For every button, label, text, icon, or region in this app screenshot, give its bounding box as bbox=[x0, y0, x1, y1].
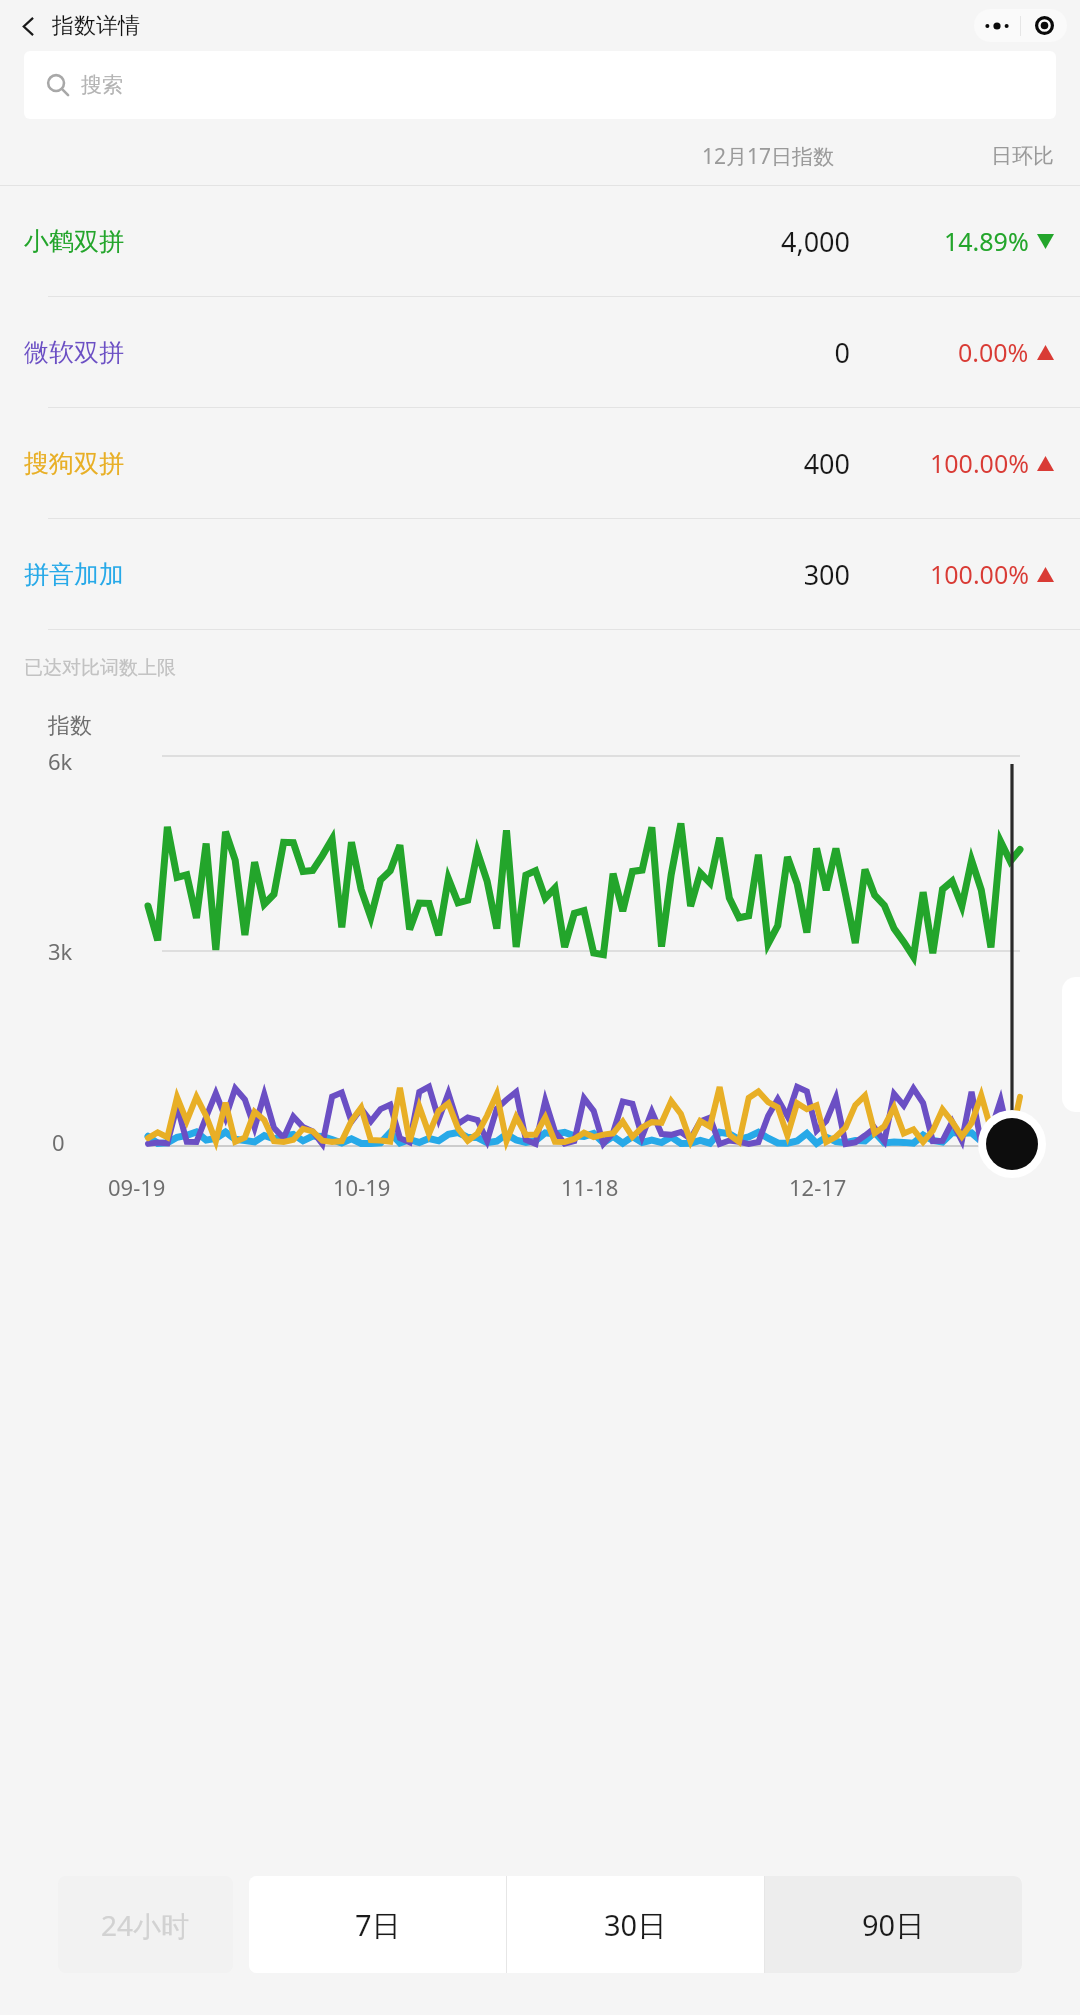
staticText: 14.89% bbox=[944, 224, 1029, 258]
staticText: 10-19 bbox=[333, 1172, 391, 1202]
staticText: 300 bbox=[620, 556, 850, 593]
staticText: 指数 bbox=[48, 712, 92, 740]
staticText: 4,000 bbox=[620, 223, 850, 260]
staticText: 400 bbox=[620, 445, 850, 482]
staticText: 100.00% bbox=[930, 557, 1029, 591]
staticText: 小鹤双拼 bbox=[24, 226, 124, 257]
staticText: 6k bbox=[48, 746, 73, 776]
staticText: 12-17 bbox=[789, 1172, 847, 1202]
staticText: 日环比 bbox=[834, 143, 1054, 169]
staticText: 09-19 bbox=[108, 1172, 166, 1202]
staticText: 24小时 bbox=[101, 1906, 190, 1944]
staticText: 11-18 bbox=[561, 1172, 619, 1202]
staticText: 7日 bbox=[355, 1905, 401, 1945]
staticText: 微软双拼 bbox=[24, 337, 124, 368]
button[interactable]: 小鹤双拼 bbox=[0, 186, 1080, 296]
button[interactable]: 24小时 bbox=[58, 1876, 233, 1973]
staticText: 搜索 bbox=[81, 72, 123, 98]
staticText: 0 bbox=[620, 334, 850, 371]
staticText: 已达对比词数上限 bbox=[24, 656, 176, 680]
button[interactable]: More bbox=[974, 9, 1020, 42]
button[interactable]: Close bbox=[1021, 9, 1067, 42]
button[interactable]: Back bbox=[13, 11, 43, 41]
staticText: 0.00% bbox=[958, 335, 1029, 369]
staticText: 0 bbox=[52, 1127, 65, 1157]
button[interactable]: 7日 bbox=[249, 1876, 506, 1973]
button[interactable]: 微软双拼 bbox=[0, 297, 1080, 407]
button[interactable]: 30日 bbox=[507, 1876, 764, 1973]
staticText: 搜狗双拼 bbox=[24, 448, 124, 479]
staticText: 30日 bbox=[604, 1905, 667, 1945]
button[interactable]: 搜索 bbox=[24, 51, 1056, 119]
staticText: 90日 bbox=[862, 1905, 925, 1945]
staticText: 指数详情 bbox=[52, 12, 140, 40]
button[interactable]: 搜狗双拼 bbox=[0, 408, 1080, 518]
button[interactable]: 90日 bbox=[765, 1876, 1022, 1973]
button[interactable]: 拼音加加 bbox=[0, 519, 1080, 629]
staticText: 12月17日指数 bbox=[569, 142, 834, 171]
staticText: 拼音加加 bbox=[24, 559, 124, 590]
staticText: 3k bbox=[48, 936, 73, 966]
staticText: 100.00% bbox=[930, 446, 1029, 480]
